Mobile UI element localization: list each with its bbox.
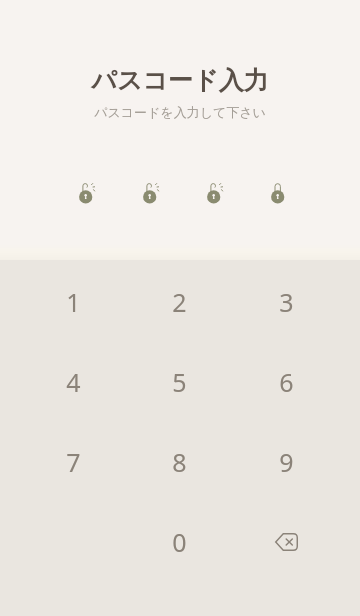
button[interactable]: 7 — [20, 422, 126, 502]
button[interactable]: 8 — [126, 422, 233, 502]
staticText: 6 — [279, 365, 294, 399]
button[interactable]: 0 — [126, 502, 233, 582]
staticText: 4 — [66, 365, 81, 399]
staticText: 1 — [66, 285, 81, 319]
staticText: 3 — [279, 285, 294, 319]
button[interactable]: 4 — [20, 342, 126, 422]
button[interactable]: 6 — [233, 342, 340, 422]
staticText: 5 — [172, 365, 187, 399]
staticText: 8 — [172, 445, 187, 479]
button[interactable]: 9 — [233, 422, 340, 502]
button[interactable]: Delete — [233, 502, 340, 582]
button[interactable]: 2 — [126, 262, 233, 342]
staticText: 0 — [172, 525, 187, 559]
staticText: 9 — [279, 445, 294, 479]
staticText: 7 — [66, 445, 81, 479]
staticText: 2 — [172, 285, 187, 319]
staticText: パスコード入力 — [91, 65, 269, 96]
staticText: パスコードを入力して下さい — [94, 104, 266, 120]
button[interactable]: 5 — [126, 342, 233, 422]
button[interactable]: 1 — [20, 262, 126, 342]
button[interactable]: 3 — [233, 262, 340, 342]
